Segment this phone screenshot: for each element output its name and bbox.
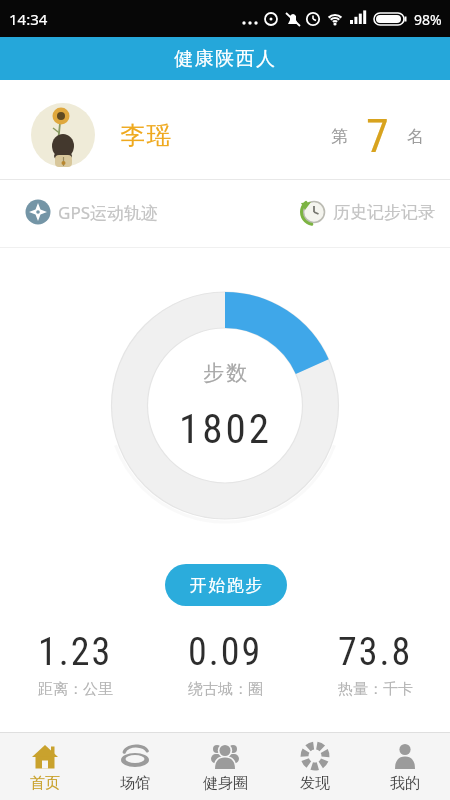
button[interactable]: 健身圈 <box>180 733 270 800</box>
staticText: 1.23 <box>38 630 113 674</box>
staticText: 0.09 <box>188 630 263 674</box>
staticText: 14:34 <box>9 9 48 29</box>
staticText: 首页 <box>30 774 60 793</box>
staticText: GPS运动轨迹 <box>58 201 158 224</box>
staticText: 健身圈 <box>203 774 248 793</box>
button[interactable]: 发现 <box>270 733 360 800</box>
staticText: 历史记步记录 <box>333 202 435 223</box>
button[interactable]: 开始跑步 <box>165 564 287 606</box>
staticText: 场馆 <box>120 774 150 793</box>
staticText: 1802 <box>179 405 272 453</box>
button[interactable]: 首页 <box>0 733 90 800</box>
staticText: 距离：公里 <box>38 680 113 698</box>
staticText: 我的 <box>390 774 420 793</box>
staticText: 绕古城：圈 <box>188 680 263 698</box>
staticText: 步数 <box>202 360 248 385</box>
staticText: 73.8 <box>338 630 413 674</box>
button[interactable]: 场馆 <box>90 733 180 800</box>
staticText: 98% <box>414 10 442 29</box>
staticText: 健康陕西人 <box>174 47 277 71</box>
button[interactable]: GPS运动轨迹 <box>25 199 158 225</box>
staticText: 李瑶 <box>120 120 172 151</box>
button[interactable]: 我的 <box>360 733 450 800</box>
staticText: 第 <box>331 126 348 147</box>
staticText: 发现 <box>300 774 330 793</box>
staticText: 开始跑步 <box>189 575 263 596</box>
staticText: 热量：千卡 <box>338 680 413 698</box>
staticText: 名 <box>407 126 424 147</box>
button[interactable]: 李瑶 <box>0 80 450 180</box>
staticText: 7 <box>366 109 389 163</box>
button[interactable]: 历史记步记录 <box>300 199 435 225</box>
